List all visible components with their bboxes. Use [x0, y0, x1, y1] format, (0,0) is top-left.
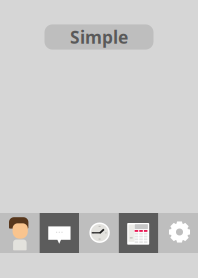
button[interactable]: Profile	[0, 213, 40, 253]
button[interactable]: Messages	[40, 213, 79, 253]
button[interactable]: Settings	[158, 213, 198, 253]
button[interactable]: Simple	[44, 24, 153, 50]
button[interactable]: Calculator	[119, 213, 158, 253]
staticText: Simple	[70, 25, 128, 48]
button[interactable]: Clock	[79, 213, 119, 253]
